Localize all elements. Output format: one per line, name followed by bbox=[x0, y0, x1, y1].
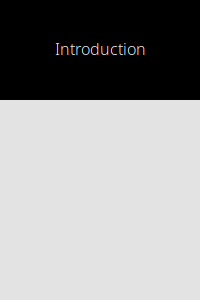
staticText: Introduction bbox=[55, 38, 146, 59]
